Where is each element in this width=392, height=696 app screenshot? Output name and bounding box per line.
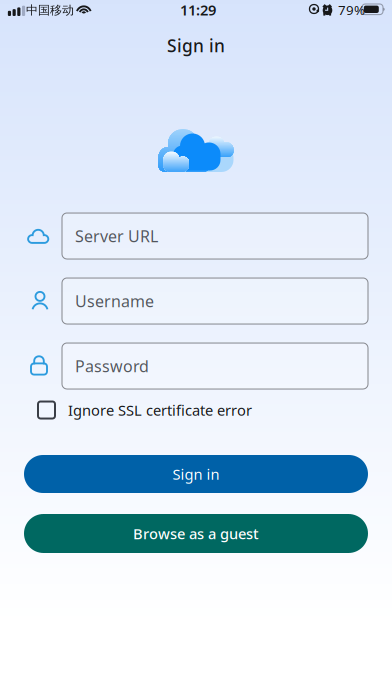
staticText: Sign in xyxy=(167,34,225,57)
staticText: 79% xyxy=(338,1,365,19)
staticText: Username xyxy=(75,290,154,312)
staticText: 11:29 xyxy=(180,0,216,19)
staticText: Browse as a guest xyxy=(133,524,259,543)
button[interactable]: Sign in xyxy=(24,455,368,493)
staticText: Server URL xyxy=(75,225,158,247)
staticText: Password xyxy=(75,355,149,377)
button[interactable]: Ignore SSL certificate error xyxy=(0,395,392,425)
staticText: 中国移动 xyxy=(26,3,74,18)
staticText: Ignore SSL certificate error xyxy=(68,400,252,420)
staticText: Sign in xyxy=(172,464,219,484)
button[interactable]: Browse as a guest xyxy=(24,514,368,553)
